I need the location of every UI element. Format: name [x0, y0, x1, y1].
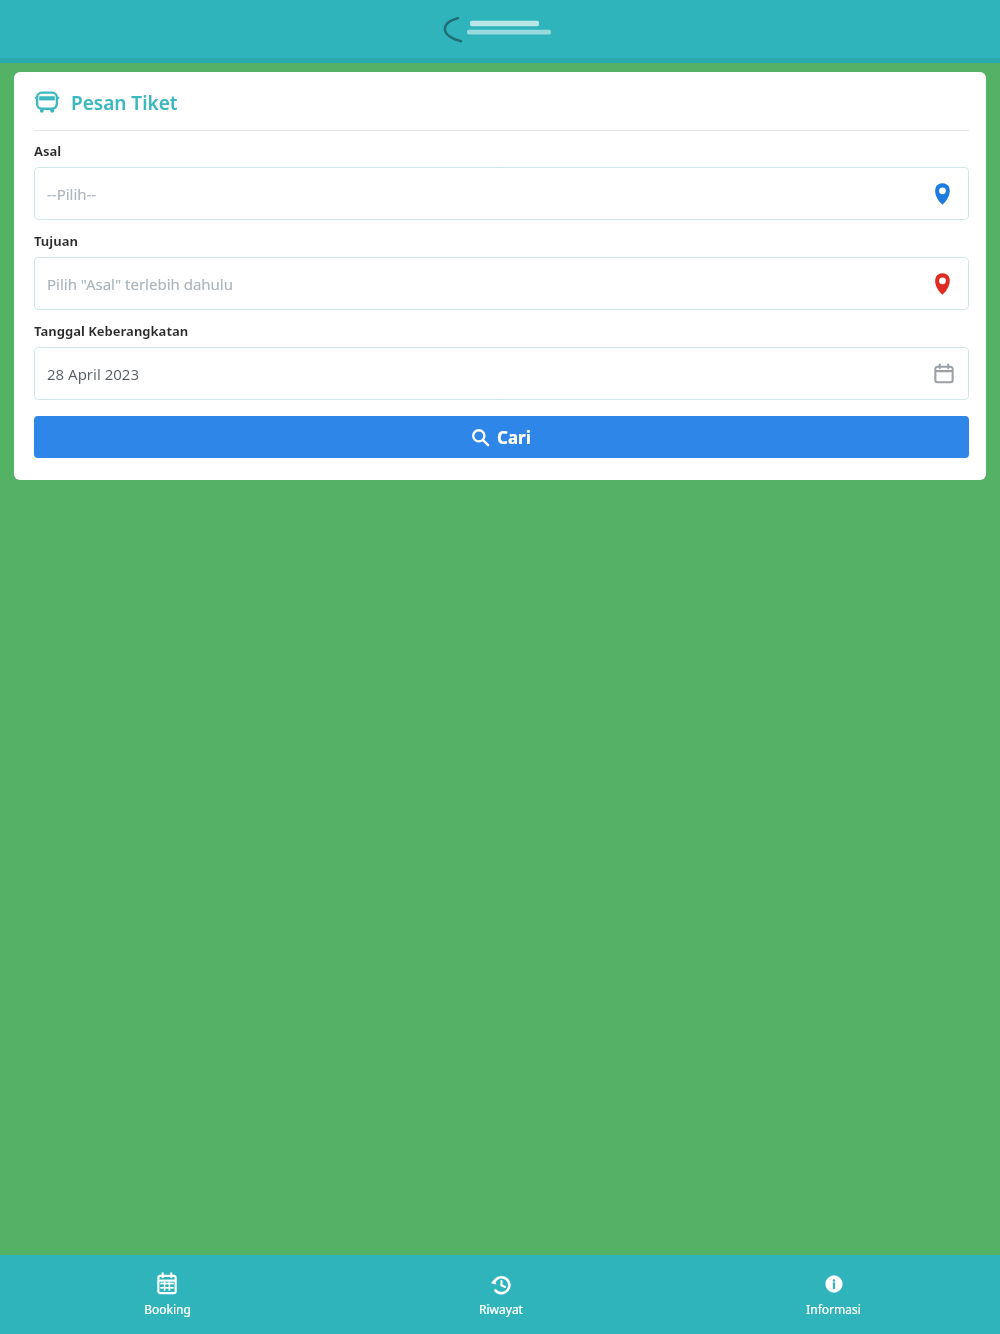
button[interactable]: Pilih asal keberangkatan	[34, 167, 969, 220]
staticText: Riwayat	[479, 1301, 523, 1317]
button[interactable]: Informasi	[667, 1266, 1000, 1323]
staticText: Tanggal Keberangkatan	[34, 322, 189, 340]
button[interactable]: Booking	[0, 1266, 334, 1323]
staticText: Pilih "Asal" terlebih dahulu	[47, 274, 929, 294]
staticText: Cari	[497, 426, 531, 449]
button[interactable]: Riwayat	[334, 1266, 667, 1323]
button[interactable]: Pilih tujuan	[34, 257, 969, 310]
staticText: Informasi	[806, 1301, 861, 1317]
staticText: Pesan Tiket	[71, 90, 178, 116]
button[interactable]: Cari	[34, 416, 969, 458]
staticText: Asal	[34, 142, 62, 160]
staticText: Tujuan	[34, 232, 78, 250]
button[interactable]: Pilih tanggal keberangkatan	[34, 347, 969, 400]
staticText: --Pilih--	[47, 184, 929, 204]
staticText: 28 April 2023	[47, 364, 932, 384]
staticText: Booking	[144, 1301, 191, 1317]
